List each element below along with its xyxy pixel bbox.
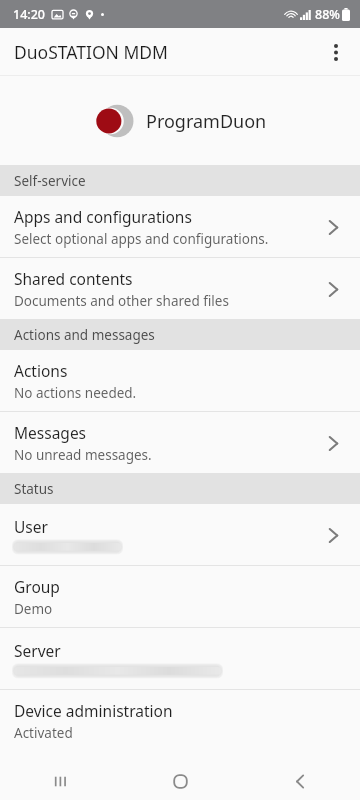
staticText: Documents and other shared files xyxy=(14,292,229,310)
staticText: Self-service xyxy=(14,172,86,190)
staticText: Messages xyxy=(14,422,87,443)
button[interactable]: Recents xyxy=(0,763,120,800)
button[interactable]: Device administration xyxy=(0,690,360,751)
button[interactable]: Server xyxy=(0,628,360,689)
staticText: Shared contents xyxy=(14,268,133,289)
staticText: Demo xyxy=(14,600,53,618)
button[interactable]: Actions xyxy=(0,350,360,411)
button[interactable]: Shared contents xyxy=(0,258,360,319)
button[interactable]: Messages xyxy=(0,412,360,473)
staticText: Actions and messages xyxy=(14,326,155,344)
staticText: Actions xyxy=(14,360,68,381)
staticText: Group xyxy=(14,576,60,597)
button[interactable]: Back xyxy=(240,763,360,800)
button[interactable]: Apps and configurations xyxy=(0,196,360,257)
staticText: Status xyxy=(14,480,54,498)
staticText: 14:20 xyxy=(13,6,46,23)
staticText: Activated xyxy=(14,724,73,742)
staticText: Select optional apps and configurations. xyxy=(14,230,269,248)
staticText: Server xyxy=(14,640,61,661)
staticText: ProgramDuon xyxy=(146,109,267,134)
staticText: No unread messages. xyxy=(14,446,152,464)
button[interactable]: Group xyxy=(0,566,360,627)
staticText: Apps and configurations xyxy=(14,206,192,227)
staticText: No actions needed. xyxy=(14,384,137,402)
button[interactable]: More options xyxy=(312,28,360,76)
staticText: Device administration xyxy=(14,700,173,721)
staticText: DuoSTATION MDM xyxy=(14,40,168,64)
staticText: 88% xyxy=(315,6,340,23)
staticText: User xyxy=(14,516,48,537)
button[interactable]: User xyxy=(0,504,360,565)
button[interactable]: Home xyxy=(120,763,240,800)
